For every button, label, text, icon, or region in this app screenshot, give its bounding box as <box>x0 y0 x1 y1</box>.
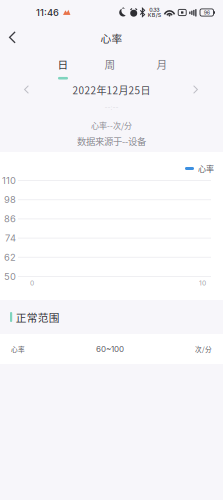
staticText: 98 <box>4 194 16 205</box>
staticText: 正常范围 <box>16 309 60 325</box>
staticText: 0 <box>30 279 34 287</box>
staticText: 心率 <box>198 163 214 174</box>
staticText: 心率--次/分 <box>91 119 132 131</box>
button[interactable]: Back <box>0 25 26 51</box>
staticText: 0.33 <box>149 7 159 13</box>
staticText: 心率 <box>100 30 122 46</box>
staticText: 74 <box>5 232 16 244</box>
button[interactable]: Next day <box>182 81 210 99</box>
staticText: 数据来源于--设备 <box>77 134 146 148</box>
button[interactable]: Previous day <box>13 81 41 99</box>
staticText: 心率 <box>11 344 25 354</box>
button[interactable]: 月 <box>150 58 173 78</box>
staticText: 次/分 <box>195 344 212 354</box>
staticText: 日 <box>57 56 68 72</box>
staticText: 2022年12月25日 <box>72 83 150 97</box>
staticText: 11:46 <box>36 7 59 18</box>
staticText: 110 <box>2 175 16 186</box>
staticText: 50 <box>4 271 16 282</box>
staticText: 10 <box>199 279 206 287</box>
staticText: 60~100 <box>96 344 124 354</box>
staticText: --:-- <box>104 103 118 111</box>
button[interactable]: 日 <box>51 58 74 78</box>
staticText: 86 <box>4 213 16 225</box>
staticText: 周 <box>104 56 115 72</box>
staticText: 62 <box>4 252 16 263</box>
staticText: 月 <box>156 56 167 72</box>
staticText: KB/S <box>148 12 161 18</box>
staticText: 96 <box>204 9 210 16</box>
button[interactable]: 周 <box>98 58 121 78</box>
